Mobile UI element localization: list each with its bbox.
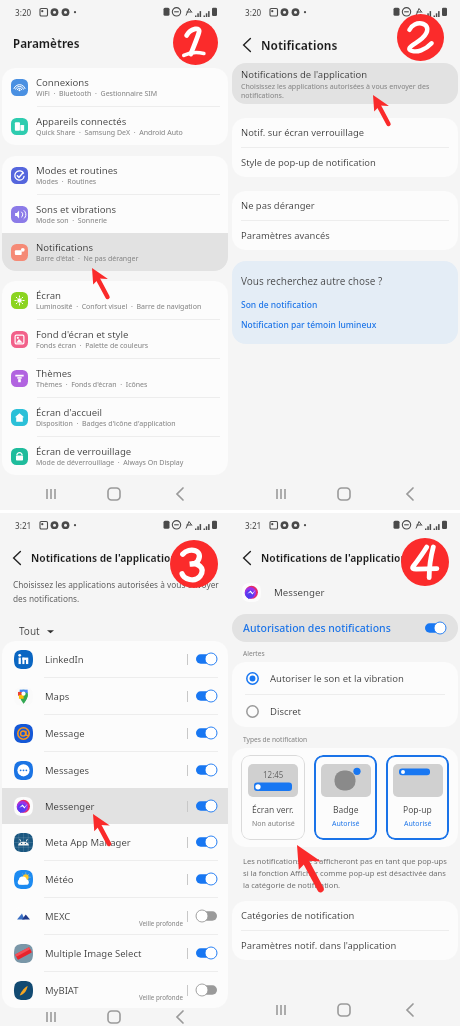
staticText: Ne pas déranger bbox=[241, 199, 315, 212]
button[interactable]: Back bbox=[236, 34, 258, 56]
button[interactable]: MyBIAT bbox=[2, 972, 228, 1008]
staticText: Catégories de notification bbox=[241, 909, 355, 922]
button[interactable]: Notifications de l'application bbox=[232, 63, 458, 104]
staticText: Autorisé bbox=[332, 819, 360, 829]
staticText: Fonds écran · Palette de couleurs bbox=[36, 341, 149, 351]
button[interactable]: Modes et routines bbox=[2, 156, 228, 194]
button[interactable]: Toggle bbox=[196, 800, 217, 812]
staticText: Choisissez les applications autorisées à… bbox=[241, 81, 450, 100]
button[interactable]: Notification par témoin lumineux bbox=[241, 319, 377, 331]
staticText: Pop-up bbox=[403, 804, 432, 816]
staticText: Choisissez les applications autorisées à… bbox=[13, 579, 222, 605]
button[interactable]: Maps bbox=[2, 678, 228, 714]
staticText: Notif. sur écran verrouillage bbox=[241, 126, 364, 139]
button[interactable]: Son de notification bbox=[241, 299, 318, 311]
staticText: Mode de déverrouillage · Always On Displ… bbox=[36, 458, 184, 468]
staticText: Autoriser le son et la vibration bbox=[270, 672, 404, 685]
button[interactable]: Fond d'écran et style bbox=[2, 320, 228, 358]
button[interactable]: Messages bbox=[2, 752, 228, 788]
button[interactable]: Écran d'accueil bbox=[2, 398, 228, 436]
button[interactable]: Catégories de notification bbox=[232, 901, 458, 930]
staticText: Écran bbox=[36, 289, 62, 302]
staticText: Notifications bbox=[36, 241, 94, 254]
staticText: Autorisé bbox=[404, 819, 432, 829]
staticText: Alertes bbox=[243, 649, 265, 658]
button[interactable]: MEXC bbox=[2, 898, 228, 934]
staticText: 3:20 bbox=[245, 7, 262, 18]
staticText: Tout bbox=[19, 624, 40, 638]
button[interactable]: LinkedIn bbox=[2, 641, 228, 677]
staticText: Notifications bbox=[261, 37, 338, 53]
staticText: Connexions bbox=[36, 76, 89, 89]
staticText: Autorisation des notifications bbox=[243, 621, 391, 635]
button[interactable]: Thèmes bbox=[2, 359, 228, 397]
button[interactable]: Notifications bbox=[2, 233, 228, 271]
button[interactable]: Écran de verrouillage bbox=[2, 437, 228, 475]
staticText: Messenger bbox=[274, 586, 325, 599]
staticText: MyBIAT bbox=[45, 984, 79, 997]
button[interactable]: Multiple Image Select bbox=[2, 935, 228, 971]
staticText: 3:20 bbox=[15, 7, 32, 18]
staticText: Paramètres avancés bbox=[241, 229, 330, 242]
button[interactable]: Écran bbox=[2, 281, 228, 319]
button[interactable]: Discret bbox=[232, 695, 458, 727]
button[interactable]: Style de pop-up de notification bbox=[232, 148, 458, 177]
button[interactable]: Appareils connectés bbox=[2, 107, 228, 145]
button[interactable]: Toggle bbox=[196, 984, 217, 996]
button[interactable]: Notif. sur écran verrouillage bbox=[232, 118, 458, 147]
staticText: Fond d'écran et style bbox=[36, 328, 129, 341]
staticText: Thèmes bbox=[36, 367, 72, 380]
button[interactable]: Toggle bbox=[196, 873, 217, 885]
button[interactable]: Message bbox=[2, 715, 228, 751]
staticText: Maps bbox=[45, 690, 70, 703]
button[interactable]: Toggle bbox=[196, 653, 217, 665]
staticText: Discret bbox=[270, 705, 302, 718]
staticText: 3:21 bbox=[15, 520, 32, 531]
button[interactable]: Back bbox=[6, 547, 28, 569]
button[interactable]: Toggle bbox=[196, 910, 217, 922]
button[interactable]: Toggle bbox=[196, 836, 217, 848]
staticText: Sons et vibrations bbox=[36, 203, 117, 216]
button[interactable]: Autorisation des notifications bbox=[232, 614, 458, 642]
staticText: Écran d'accueil bbox=[36, 406, 103, 419]
button[interactable]: Ne pas déranger bbox=[232, 191, 458, 220]
button[interactable]: Paramètres notif. dans l'application bbox=[232, 931, 458, 960]
staticText: LinkedIn bbox=[45, 653, 84, 666]
button[interactable]: Sons et vibrations bbox=[2, 195, 228, 233]
button[interactable]: Badge bbox=[314, 755, 377, 840]
button[interactable]: Pop-up bbox=[386, 755, 449, 840]
staticText: 12:45 bbox=[263, 769, 284, 780]
button[interactable]: Toggle bbox=[196, 947, 217, 959]
button[interactable]: Back bbox=[236, 547, 258, 569]
staticText: Non autorisé bbox=[252, 819, 295, 829]
button[interactable]: Paramètres avancés bbox=[232, 221, 458, 250]
button[interactable]: Toggle bbox=[196, 764, 217, 776]
staticText: Modes et routines bbox=[36, 164, 118, 177]
staticText: Météo bbox=[45, 873, 74, 886]
staticText: MEXC bbox=[45, 910, 71, 923]
button[interactable]: Messenger bbox=[2, 788, 228, 824]
staticText: Notifications de l'application bbox=[261, 551, 408, 565]
button[interactable]: Toggle bbox=[196, 727, 217, 739]
staticText: Badge bbox=[333, 804, 359, 816]
staticText: Modes · Routines bbox=[36, 177, 97, 187]
staticText: Écran de verrouillage bbox=[36, 445, 132, 458]
staticText: Paramètres notif. dans l'application bbox=[241, 939, 397, 952]
staticText: Mode son · Sonnerie bbox=[36, 216, 108, 226]
staticText: Quick Share · Samsung DeX · Android Auto bbox=[36, 128, 183, 138]
button[interactable]: Connexions bbox=[2, 68, 228, 106]
staticText: Vous recherchez autre chose ? bbox=[241, 274, 383, 288]
button[interactable]: Toggle bbox=[196, 690, 217, 702]
staticText: Thèmes · Fonds d'écran · Icônes bbox=[36, 380, 148, 390]
button[interactable]: Toggle bbox=[425, 622, 446, 634]
button[interactable]: Tout bbox=[19, 624, 54, 638]
button[interactable]: 12:45 bbox=[241, 755, 305, 840]
staticText: Veille profonde bbox=[139, 919, 183, 927]
button[interactable]: Autoriser le son et la vibration bbox=[232, 662, 458, 694]
staticText: Luminosité · Confort visuel · Barre de n… bbox=[36, 302, 202, 312]
button[interactable]: Meta App Manager bbox=[2, 824, 228, 860]
staticText: Notifications de l'application bbox=[241, 68, 368, 81]
staticText: Écran verr. bbox=[252, 804, 294, 816]
button[interactable]: Météo bbox=[2, 861, 228, 897]
staticText: Les notifications ne s'afficheront pas e… bbox=[243, 856, 452, 890]
